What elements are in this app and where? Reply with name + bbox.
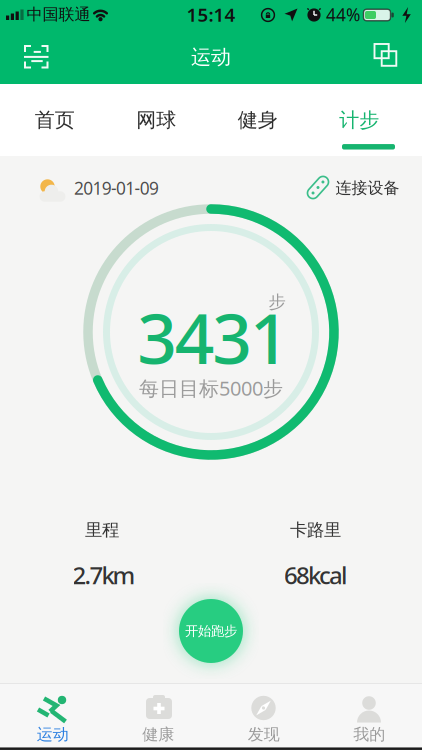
staticText: 2019-01-09 <box>74 176 159 199</box>
staticText: 首页 <box>35 108 75 132</box>
staticText: 3431 <box>137 291 290 383</box>
staticText: 健康 <box>142 725 174 744</box>
staticText: 中国联通 <box>26 5 90 24</box>
staticText: 卡路里 <box>290 519 341 541</box>
staticText: 发现 <box>248 725 280 744</box>
staticText: 44% <box>326 3 360 26</box>
button[interactable]: 扫一扫 <box>13 36 57 76</box>
button[interactable]: 发现 <box>224 685 304 747</box>
staticText: 2.7km <box>72 559 135 591</box>
staticText: 15:14 <box>186 2 235 27</box>
staticText: 连接设备 <box>335 178 399 198</box>
button[interactable]: 我的 <box>329 685 409 747</box>
staticText: 里程 <box>85 519 119 541</box>
button[interactable]: 运动 <box>13 685 93 747</box>
button[interactable]: 健身 <box>207 84 308 156</box>
staticText: 每日目标5000步 <box>139 375 283 401</box>
button[interactable]: 连接设备 <box>294 167 404 207</box>
button[interactable]: 首页 <box>4 84 105 156</box>
button[interactable]: 网球 <box>105 84 207 156</box>
staticText: 开始跑步 <box>185 623 237 639</box>
staticText: 运动 <box>191 45 231 69</box>
button[interactable]: 切换 <box>363 35 407 75</box>
staticText: 计步 <box>339 108 379 132</box>
button[interactable]: 健康 <box>118 685 198 747</box>
staticText: 运动 <box>37 725 69 744</box>
staticText: 我的 <box>353 725 385 744</box>
staticText: 网球 <box>136 108 176 132</box>
staticText: 68kcal <box>284 559 347 591</box>
button[interactable]: 开始跑步 <box>179 599 243 663</box>
staticText: 步 <box>268 291 285 313</box>
staticText: 健身 <box>238 108 278 132</box>
button[interactable]: 计步 <box>308 84 410 156</box>
